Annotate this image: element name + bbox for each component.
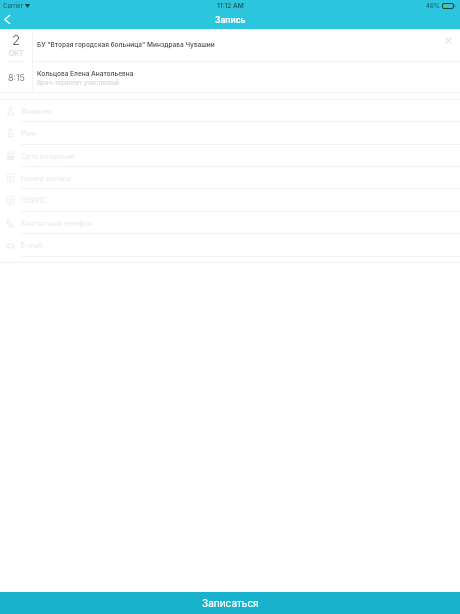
button[interactable]: 2 xyxy=(0,29,460,61)
staticText: 46% xyxy=(426,2,440,9)
button[interactable]: Дата рождения xyxy=(0,145,460,167)
staticText: Кольцова Елена Анатольевна xyxy=(37,70,134,78)
staticText: Фамилия xyxy=(21,107,53,115)
button[interactable]: 8:15 xyxy=(0,62,460,92)
button[interactable]: Фамилия xyxy=(0,100,460,122)
staticText: БУ "Вторая городская больница" Минздрава… xyxy=(37,41,215,49)
staticText: Дата рождения xyxy=(21,152,75,160)
staticText: Записаться xyxy=(202,597,259,609)
staticText: Имя xyxy=(21,129,36,137)
staticText: Запись xyxy=(215,15,246,25)
staticText: Врач-терапевт участковый xyxy=(37,79,120,87)
button[interactable]: Номер полиса xyxy=(0,167,460,189)
staticText: Контактный телефон xyxy=(21,219,93,227)
staticText: ОКТ xyxy=(9,49,24,57)
staticText: 8:15 xyxy=(8,72,25,83)
staticText: E-mail xyxy=(21,241,42,249)
button[interactable]: Записаться xyxy=(0,592,460,614)
button[interactable]: Отменить запись xyxy=(442,34,455,47)
staticText: Номер полиса xyxy=(21,174,71,182)
staticText: СНИЛС xyxy=(21,196,47,204)
button[interactable]: Контактный телефон xyxy=(0,212,460,234)
button[interactable]: Back xyxy=(0,11,18,29)
staticText: 11:12 AM xyxy=(217,2,244,10)
staticText: 2 xyxy=(12,32,21,48)
staticText: Carrier xyxy=(3,2,23,9)
